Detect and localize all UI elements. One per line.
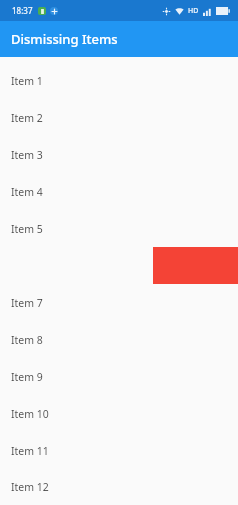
button[interactable]: Item 4	[0, 173, 238, 210]
button[interactable]: Item 11	[0, 432, 238, 469]
staticText: Dismissing Items	[11, 30, 118, 48]
staticText: Item 1	[11, 74, 43, 88]
staticText: Item 9	[11, 370, 43, 384]
staticText: Item 7	[11, 296, 43, 310]
button[interactable]: Item 3	[0, 136, 238, 173]
staticText: Item 5	[11, 222, 43, 236]
button[interactable]: Item 1	[0, 62, 238, 99]
staticText: Item 3	[11, 148, 43, 162]
staticText: Item 12	[11, 480, 49, 494]
button[interactable]: Item 7	[0, 284, 238, 321]
button[interactable]: Item 8	[0, 321, 238, 358]
button[interactable]: Item 12	[0, 469, 238, 505]
button[interactable]: Item 10	[0, 395, 238, 432]
staticText: Item 2	[11, 111, 43, 125]
button[interactable]: Item 5	[0, 210, 238, 247]
staticText: Item 4	[11, 185, 43, 199]
staticText: Item 10	[11, 407, 49, 421]
staticText: HD	[188, 6, 199, 16]
staticText: 18:37	[12, 5, 33, 16]
button[interactable]: Item 6, swiped to dismiss	[0, 247, 238, 284]
button[interactable]: Item 2	[0, 99, 238, 136]
staticText: Item 11	[11, 444, 49, 458]
staticText: Item 8	[11, 333, 43, 347]
button[interactable]: Item 9	[0, 358, 238, 395]
